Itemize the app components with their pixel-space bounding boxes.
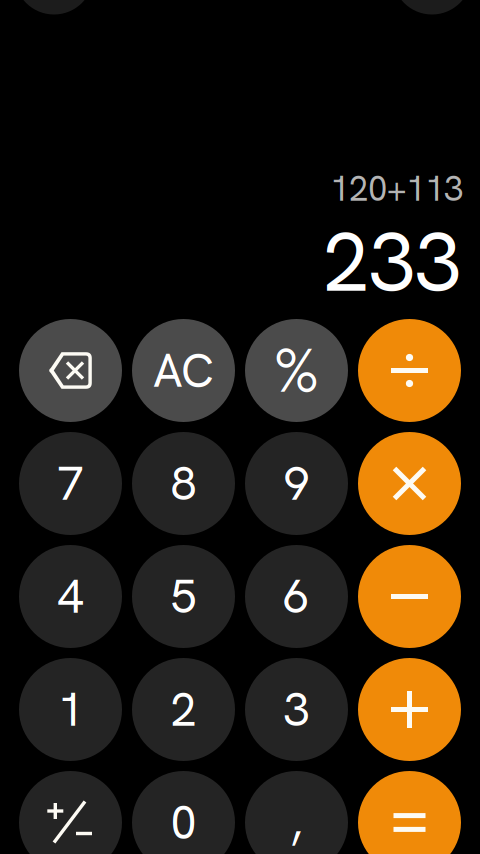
staticText: AC [153, 340, 214, 401]
button[interactable]: 8 [132, 432, 235, 535]
staticText: 8 [170, 453, 196, 514]
staticText: 120+113 [330, 166, 463, 211]
button[interactable]: 4 [19, 545, 122, 648]
button[interactable]: Multiply [358, 432, 461, 535]
button[interactable]: 0 [132, 771, 235, 854]
button[interactable]: Divide [358, 319, 461, 422]
button[interactable]: Add [358, 658, 461, 761]
staticText: 5 [170, 566, 196, 627]
button[interactable]: Subtract [358, 545, 461, 648]
button[interactable]: AC [132, 319, 235, 422]
staticText: % [273, 330, 319, 410]
button[interactable]: 7 [19, 432, 122, 535]
staticText: 9 [283, 453, 309, 514]
button[interactable]: % [245, 319, 348, 422]
staticText: 233 [323, 208, 461, 316]
button[interactable]: Toggle sign [19, 771, 122, 854]
staticText: 4 [57, 566, 83, 627]
staticText: 3 [283, 679, 309, 740]
staticText: 0 [170, 792, 196, 853]
staticText: 2 [170, 679, 196, 740]
staticText: , [291, 792, 302, 853]
button[interactable]: 5 [132, 545, 235, 648]
button[interactable]: , [245, 771, 348, 854]
button[interactable]: 1 [19, 658, 122, 761]
button[interactable]: 2 [132, 658, 235, 761]
button[interactable]: 3 [245, 658, 348, 761]
button[interactable]: Delete [19, 319, 122, 422]
button[interactable]: 9 [245, 432, 348, 535]
button[interactable]: Equals [358, 771, 461, 854]
staticText: 1 [57, 679, 83, 740]
staticText: 7 [57, 453, 83, 514]
button[interactable]: 6 [245, 545, 348, 648]
staticText: 6 [283, 566, 309, 627]
